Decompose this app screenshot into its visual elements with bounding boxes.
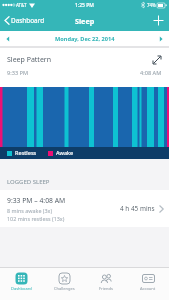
staticText: Dashboard [11,286,32,291]
button[interactable] [4,35,12,43]
staticText: Sleep Pattern [7,55,52,65]
staticText: 74% [147,2,156,8]
button[interactable]: Dashboard [4,16,45,25]
button[interactable]: Dashboard [0,268,43,300]
button[interactable]: Friends [85,268,127,300]
staticText: 102 mins restless (13x) [7,215,65,222]
button[interactable]: Account [127,268,169,300]
staticText: LOGGED SLEEP [7,178,50,186]
staticText: Challenges [54,286,75,291]
staticText: Account [140,286,156,291]
staticText: Dashboard [11,16,45,25]
staticText: 9:33 PM [7,69,29,77]
staticText: 1:25 PM [75,2,94,9]
button[interactable] [157,35,165,43]
staticText: Sleep [75,16,95,26]
button[interactable] [153,15,164,26]
staticText: Restless [15,149,37,157]
staticText: 4 h 45 mins [120,204,155,213]
staticText: 8 mins awake (3x) [7,207,53,214]
staticText: Friends [99,286,113,291]
staticText: 9:33 PM – 4:08 AM [7,196,66,205]
staticText: AT&T [16,2,27,8]
button[interactable] [152,55,162,65]
staticText: 4:08 AM [140,69,162,77]
staticText: Monday, Dec 22, 2014 [55,35,115,43]
button[interactable]: 9:33 PM – 4:08 AM [0,190,169,227]
button[interactable]: Challenges [43,268,85,300]
staticText: Awake [56,149,74,157]
